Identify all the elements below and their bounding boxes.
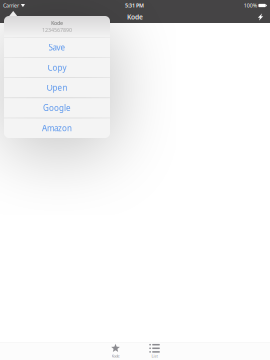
staticText: Save (48, 42, 65, 53)
button[interactable]: List (135, 342, 174, 360)
staticText: Kode (111, 353, 119, 359)
button[interactable]: Flash (251, 11, 270, 23)
staticText: Copy (47, 62, 66, 73)
staticText: Kode (51, 19, 63, 26)
staticText: Kode (127, 13, 143, 21)
staticText: 1234567890 (42, 26, 72, 34)
staticText: 100% (244, 2, 257, 9)
staticText: List (151, 353, 157, 359)
staticText: 5:31 PM (125, 2, 144, 9)
button[interactable]: Open (4, 78, 110, 98)
staticText: Google (43, 103, 71, 113)
button[interactable]: Kode (96, 342, 135, 360)
staticText: Open (46, 82, 67, 93)
staticText: Carrier (3, 2, 19, 9)
button[interactable]: Amazon (4, 118, 110, 138)
button[interactable]: Google (4, 98, 110, 118)
staticText: Amazon (42, 123, 72, 133)
button[interactable]: Copy (4, 58, 110, 77)
button[interactable]: Save (4, 37, 110, 57)
